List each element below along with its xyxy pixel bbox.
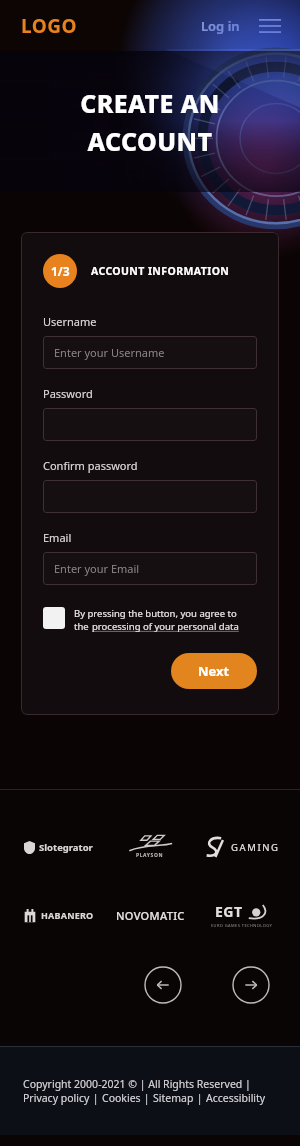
staticText: Log in: [201, 17, 240, 35]
staticText: the: [74, 620, 92, 633]
button[interactable]: Slotegrator: [14, 830, 102, 864]
staticText: Copyright 2000-2021 © | All Rights Reser…: [23, 1077, 251, 1091]
button[interactable]: Accessibility: [206, 1091, 266, 1105]
staticText: Username: [43, 314, 97, 329]
staticText: Slotegrator: [39, 841, 93, 854]
button[interactable]: [43, 480, 257, 513]
button[interactable]: Sitemap: [153, 1091, 194, 1105]
staticText: Next: [198, 662, 230, 680]
button[interactable]: GAMING: [198, 830, 286, 864]
staticText: |: [90, 1091, 102, 1105]
button[interactable]: EGT: [198, 898, 286, 932]
staticText: HABANERO: [41, 909, 94, 921]
button[interactable]: Next: [171, 653, 257, 689]
button[interactable]: Privacy policy: [23, 1091, 90, 1105]
staticText: 1/3: [51, 263, 70, 279]
staticText: Enter your Username: [54, 345, 165, 360]
staticText: By pressing the button, you agree to: [74, 607, 237, 620]
staticText: EURO GAMES TECHNOLOGY: [211, 923, 273, 928]
button[interactable]: Agree to terms: [43, 607, 257, 633]
staticText: NOVOMATIC: [116, 908, 185, 923]
staticText: ACCOUNT INFORMATION: [91, 264, 230, 278]
button[interactable]: Menu: [256, 12, 284, 40]
staticText: GAMING: [231, 841, 280, 854]
button[interactable]: processing of your personal data: [92, 620, 239, 633]
button[interactable]: Enter your Username: [43, 336, 257, 369]
staticText: |: [141, 1091, 153, 1105]
staticText: Confirm password: [43, 458, 138, 473]
staticText: CREATE AN: [80, 86, 220, 120]
button[interactable]: Cookies: [102, 1091, 141, 1105]
staticText: PLAYSON: [136, 852, 164, 859]
button[interactable]: Enter your Email: [43, 552, 257, 585]
staticText: Password: [43, 386, 93, 401]
other: Agree to terms: [43, 607, 65, 629]
staticText: |: [194, 1091, 206, 1105]
staticText: EGT: [215, 902, 243, 921]
button[interactable]: Next partners: [232, 966, 270, 1004]
staticText: Email: [43, 530, 72, 545]
button[interactable]: LOGO: [21, 13, 78, 39]
button[interactable]: [43, 408, 257, 441]
staticText: Enter your Email: [54, 561, 140, 576]
staticText: ACCOUNT: [87, 124, 213, 158]
button[interactable]: PLAYSON: [106, 830, 194, 864]
button[interactable]: Previous partners: [144, 966, 182, 1004]
button[interactable]: HABANERO: [14, 898, 102, 932]
button[interactable]: Log in: [197, 13, 244, 39]
button[interactable]: NOVOMATIC: [106, 898, 194, 932]
